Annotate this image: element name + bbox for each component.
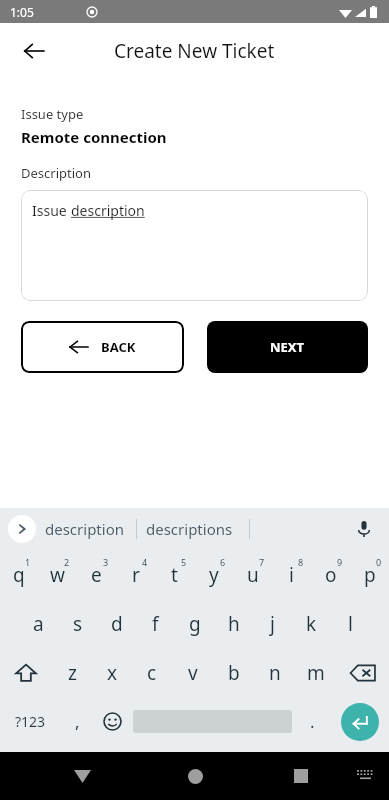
staticText: k [306,611,317,637]
button[interactable]: Emoji [95,697,130,746]
button[interactable]: b [213,648,254,697]
staticText: n [269,660,281,686]
staticText: f [152,611,159,637]
button[interactable]: k [292,599,331,648]
button[interactable]: c [132,648,172,697]
button[interactable]: v [172,648,213,697]
staticText: o [325,562,337,588]
staticText: 9 [337,556,343,568]
staticText: t [171,562,178,588]
staticText: s [73,611,83,637]
button[interactable]: y [194,550,233,599]
button[interactable]: Keyboard indicator [349,760,381,792]
button[interactable]: m [295,648,336,697]
button[interactable]: n [254,648,295,697]
button[interactable]: . [295,697,330,746]
button[interactable]: Back [62,756,102,796]
staticText: l [348,611,353,637]
button[interactable]: More suggestions [8,515,36,543]
staticText: e [91,562,102,588]
staticText: u [247,562,259,588]
staticText: j [270,611,275,637]
button[interactable]: p [350,550,389,599]
button[interactable]: a [19,599,58,648]
button[interactable]: Backspace [336,648,389,697]
button[interactable]: h [214,599,253,648]
staticText: b [228,660,240,686]
button[interactable]: q [0,550,38,599]
staticText: p [364,562,376,588]
staticText: a [33,611,44,637]
staticText: description [45,519,124,539]
staticText: descriptions [146,519,233,539]
staticText: z [68,660,77,686]
staticText: 1 [25,556,31,568]
button[interactable]: ?123 [0,697,60,746]
button[interactable]: descriptions [146,519,233,539]
button[interactable]: Issue [21,190,368,301]
staticText: description [71,201,145,220]
staticText: Issue type [21,105,84,123]
staticText: c [147,660,157,686]
button[interactable]: o [311,550,350,599]
staticText: r [132,562,140,588]
staticText: NEXT [270,338,305,356]
staticText: h [228,611,240,637]
staticText: w [50,562,65,588]
staticText: ?123 [15,712,46,731]
button[interactable]: l [331,599,370,648]
button[interactable]: i [272,550,311,599]
button[interactable]: Shift [0,648,52,697]
staticText: 5 [181,556,187,568]
button[interactable]: BACK [21,321,184,373]
staticText: Description [21,164,91,182]
button[interactable]: s [58,599,97,648]
button[interactable]: Back [14,31,54,71]
button[interactable]: , [60,697,95,746]
staticText: g [189,611,201,637]
staticText: v [188,660,198,686]
staticText: 1:05 [10,4,34,20]
staticText: BACK [101,338,136,356]
staticText: 6 [220,556,226,568]
staticText: . [310,710,315,733]
button[interactable]: x [92,648,132,697]
button[interactable]: Home [175,756,215,796]
button[interactable]: t [155,550,194,599]
button[interactable]: description [45,519,124,539]
button[interactable]: Voice input [349,514,379,544]
staticText: m [307,660,325,686]
button[interactable]: d [97,599,136,648]
staticText: i [289,562,294,588]
staticText: Create New Ticket [114,38,275,64]
button[interactable]: g [175,599,214,648]
staticText: 7 [259,556,265,568]
button[interactable]: z [52,648,92,697]
button[interactable]: Space [130,697,295,746]
staticText: , [75,710,80,733]
button[interactable]: r [116,550,155,599]
staticText: 3 [103,556,109,568]
staticText: q [13,562,25,588]
staticText: Issue [32,201,71,220]
button[interactable]: NEXT [207,321,368,373]
button[interactable]: e [77,550,116,599]
button[interactable]: Recents [281,756,321,796]
staticText: d [111,611,123,637]
staticText: 2 [64,556,70,568]
button[interactable]: w [38,550,77,599]
staticText: y [209,562,219,588]
button[interactable]: u [233,550,272,599]
staticText: 0 [376,556,382,568]
staticText: 4 [142,556,148,568]
staticText: 8 [298,556,304,568]
staticText: Remote connection [21,127,167,147]
button[interactable]: j [253,599,292,648]
button[interactable]: f [136,599,175,648]
staticText: x [107,660,118,686]
button[interactable]: Enter [330,697,389,746]
